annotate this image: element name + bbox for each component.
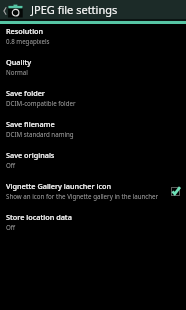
button[interactable]: Vignette Gallery launcher icon [0, 179, 186, 210]
staticText: Off [6, 223, 16, 231]
staticText: Store location data [6, 212, 72, 222]
staticText: JPEG file settings [31, 2, 118, 17]
staticText: Quality [6, 57, 32, 67]
staticText: Save filename [6, 119, 55, 129]
button[interactable]: Navigate up [0, 0, 31, 19]
staticText: Show an icon for the Vignette gallery in… [6, 192, 159, 200]
button[interactable]: Store location data [0, 210, 186, 241]
staticText: Normal [6, 68, 28, 76]
staticText: Vignette Gallery launcher icon [6, 181, 112, 191]
button[interactable]: Save folder [0, 86, 186, 117]
staticText: DCIM-compatible folder [6, 99, 76, 107]
button[interactable]: Vignette Gallery launcher icon checkbox [170, 186, 181, 197]
button[interactable]: Save filename [0, 117, 186, 148]
staticText: Off [6, 161, 16, 169]
button[interactable]: Resolution [0, 24, 186, 55]
staticText: DCIM standard naming [6, 130, 74, 138]
staticText: Save folder [6, 88, 45, 98]
staticText: Resolution [6, 26, 44, 36]
button[interactable]: Save originals [0, 148, 186, 179]
staticText: Save originals [6, 150, 55, 160]
staticText: 0.8 megapixels [6, 37, 50, 45]
button[interactable]: Quality [0, 55, 186, 86]
